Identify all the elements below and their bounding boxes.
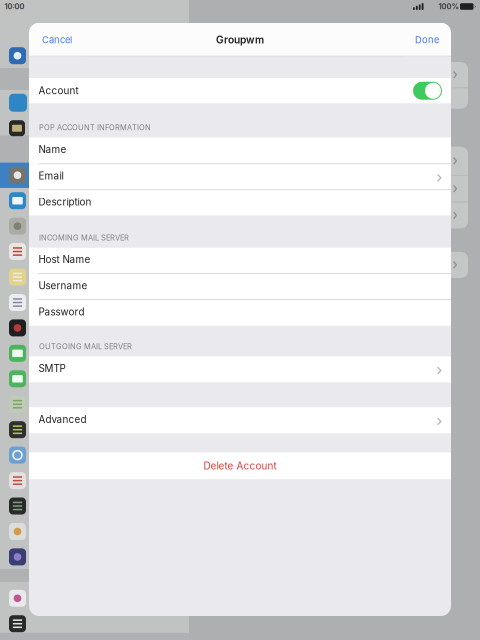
staticText: OUTGOING MAIL SERVER — [39, 342, 132, 351]
button[interactable]: Settings item — [0, 586, 49, 611]
button[interactable]: Host Name — [29, 248, 451, 273]
staticText: Description — [38, 196, 91, 208]
staticText: Host Name — [38, 253, 90, 265]
button[interactable]: Settings item — [0, 341, 49, 366]
staticText: Name — [38, 143, 66, 155]
button[interactable]: Settings item — [0, 115, 49, 141]
staticText: Password — [38, 306, 84, 318]
button[interactable]: Settings item — [0, 519, 49, 544]
button[interactable]: Settings item — [0, 417, 49, 442]
button[interactable]: Settings item — [0, 213, 49, 239]
button[interactable]: Done — [403, 23, 451, 56]
staticText: POP ACCOUNT INFORMATION — [39, 123, 151, 132]
staticText: Advanced — [38, 413, 86, 425]
button[interactable]: Settings item — [0, 442, 49, 468]
button[interactable]: Settings item — [0, 162, 49, 188]
button[interactable]: Settings item — [0, 43, 49, 68]
button[interactable]: Settings item — [0, 468, 49, 493]
button[interactable]: Cancel — [29, 23, 85, 56]
staticText: Email — [38, 170, 63, 182]
button[interactable]: Settings item — [0, 493, 49, 519]
button[interactable]: Settings item — [0, 611, 49, 636]
staticText: 10:00 — [4, 2, 24, 11]
staticText: Groupwm — [216, 34, 264, 46]
staticText: Delete Account — [203, 460, 276, 472]
button[interactable]: SMTP — [29, 356, 451, 383]
button[interactable]: Name — [29, 137, 451, 163]
button[interactable]: Settings item — [0, 391, 49, 417]
button[interactable]: Settings item — [0, 188, 49, 213]
button[interactable]: Password — [29, 300, 451, 326]
staticText: Account — [38, 85, 78, 97]
staticText: 100% — [438, 2, 458, 11]
button[interactable]: Settings item — [0, 264, 49, 290]
button[interactable]: Settings item — [0, 239, 49, 264]
staticText: Done — [415, 34, 439, 45]
staticText: SMTP — [38, 362, 65, 374]
button[interactable]: Email — [29, 164, 451, 189]
button[interactable]: Settings item — [0, 290, 49, 315]
button[interactable]: Settings item — [0, 315, 49, 341]
button[interactable]: Delete Account — [29, 452, 451, 479]
button[interactable]: Advanced — [29, 407, 451, 434]
staticText: Cancel — [42, 34, 72, 45]
button[interactable]: Account on — [413, 82, 442, 100]
button[interactable]: Settings item — [0, 90, 49, 115]
button[interactable]: Settings item — [0, 544, 49, 570]
button[interactable]: Username — [29, 274, 451, 299]
staticText: Username — [38, 280, 87, 291]
staticText: INCOMING MAIL SERVER — [39, 233, 129, 242]
button[interactable]: Settings item — [0, 366, 49, 391]
button[interactable]: Description — [29, 190, 451, 216]
